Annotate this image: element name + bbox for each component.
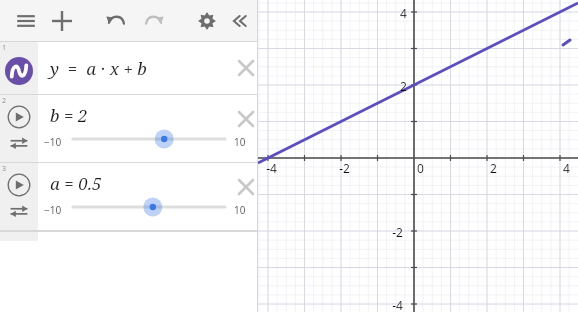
- button[interactable]: Slider: [65, 195, 233, 219]
- button[interactable]: Delete: [234, 175, 258, 199]
- button[interactable]: Animate: [7, 173, 31, 197]
- button[interactable]: 2: [0, 95, 258, 163]
- button[interactable]: Menu: [8, 0, 44, 42]
- button[interactable]: 3: [0, 163, 258, 231]
- staticText: 4: [563, 160, 570, 176]
- button[interactable]: Delete: [234, 107, 258, 131]
- staticText: -4: [392, 297, 403, 312]
- staticText: y = a · x + b: [50, 57, 147, 80]
- button[interactable]: Add: [44, 0, 80, 42]
- staticText: −10: [44, 203, 62, 217]
- staticText: 10: [234, 135, 246, 149]
- staticText: 2: [400, 78, 407, 94]
- button[interactable]: Toggle slider: [9, 135, 29, 151]
- staticText: -4: [266, 160, 277, 176]
- staticText: 10: [234, 203, 246, 217]
- button[interactable]: Slider: [65, 127, 233, 151]
- staticText: 3: [2, 164, 7, 174]
- staticText: 4: [400, 5, 407, 21]
- staticText: -2: [339, 160, 350, 176]
- button[interactable]: Animate: [7, 105, 31, 129]
- staticText: 2: [2, 96, 7, 106]
- button[interactable]: 1: [0, 42, 258, 95]
- staticText: 0: [417, 160, 424, 176]
- staticText: -2: [392, 224, 403, 240]
- button[interactable]: Undo: [98, 0, 134, 42]
- button[interactable]: Collapse panel: [224, 0, 256, 42]
- staticText: a = 0.5: [50, 172, 102, 195]
- staticText: 2: [490, 160, 497, 176]
- button[interactable]: Redo: [136, 0, 172, 42]
- button[interactable]: Settings: [190, 0, 224, 42]
- staticText: −10: [44, 135, 62, 149]
- button[interactable]: Toggle slider: [9, 203, 29, 219]
- staticText: b = 2: [50, 104, 88, 127]
- button[interactable]: Delete: [234, 56, 258, 80]
- staticText: 1: [2, 43, 7, 53]
